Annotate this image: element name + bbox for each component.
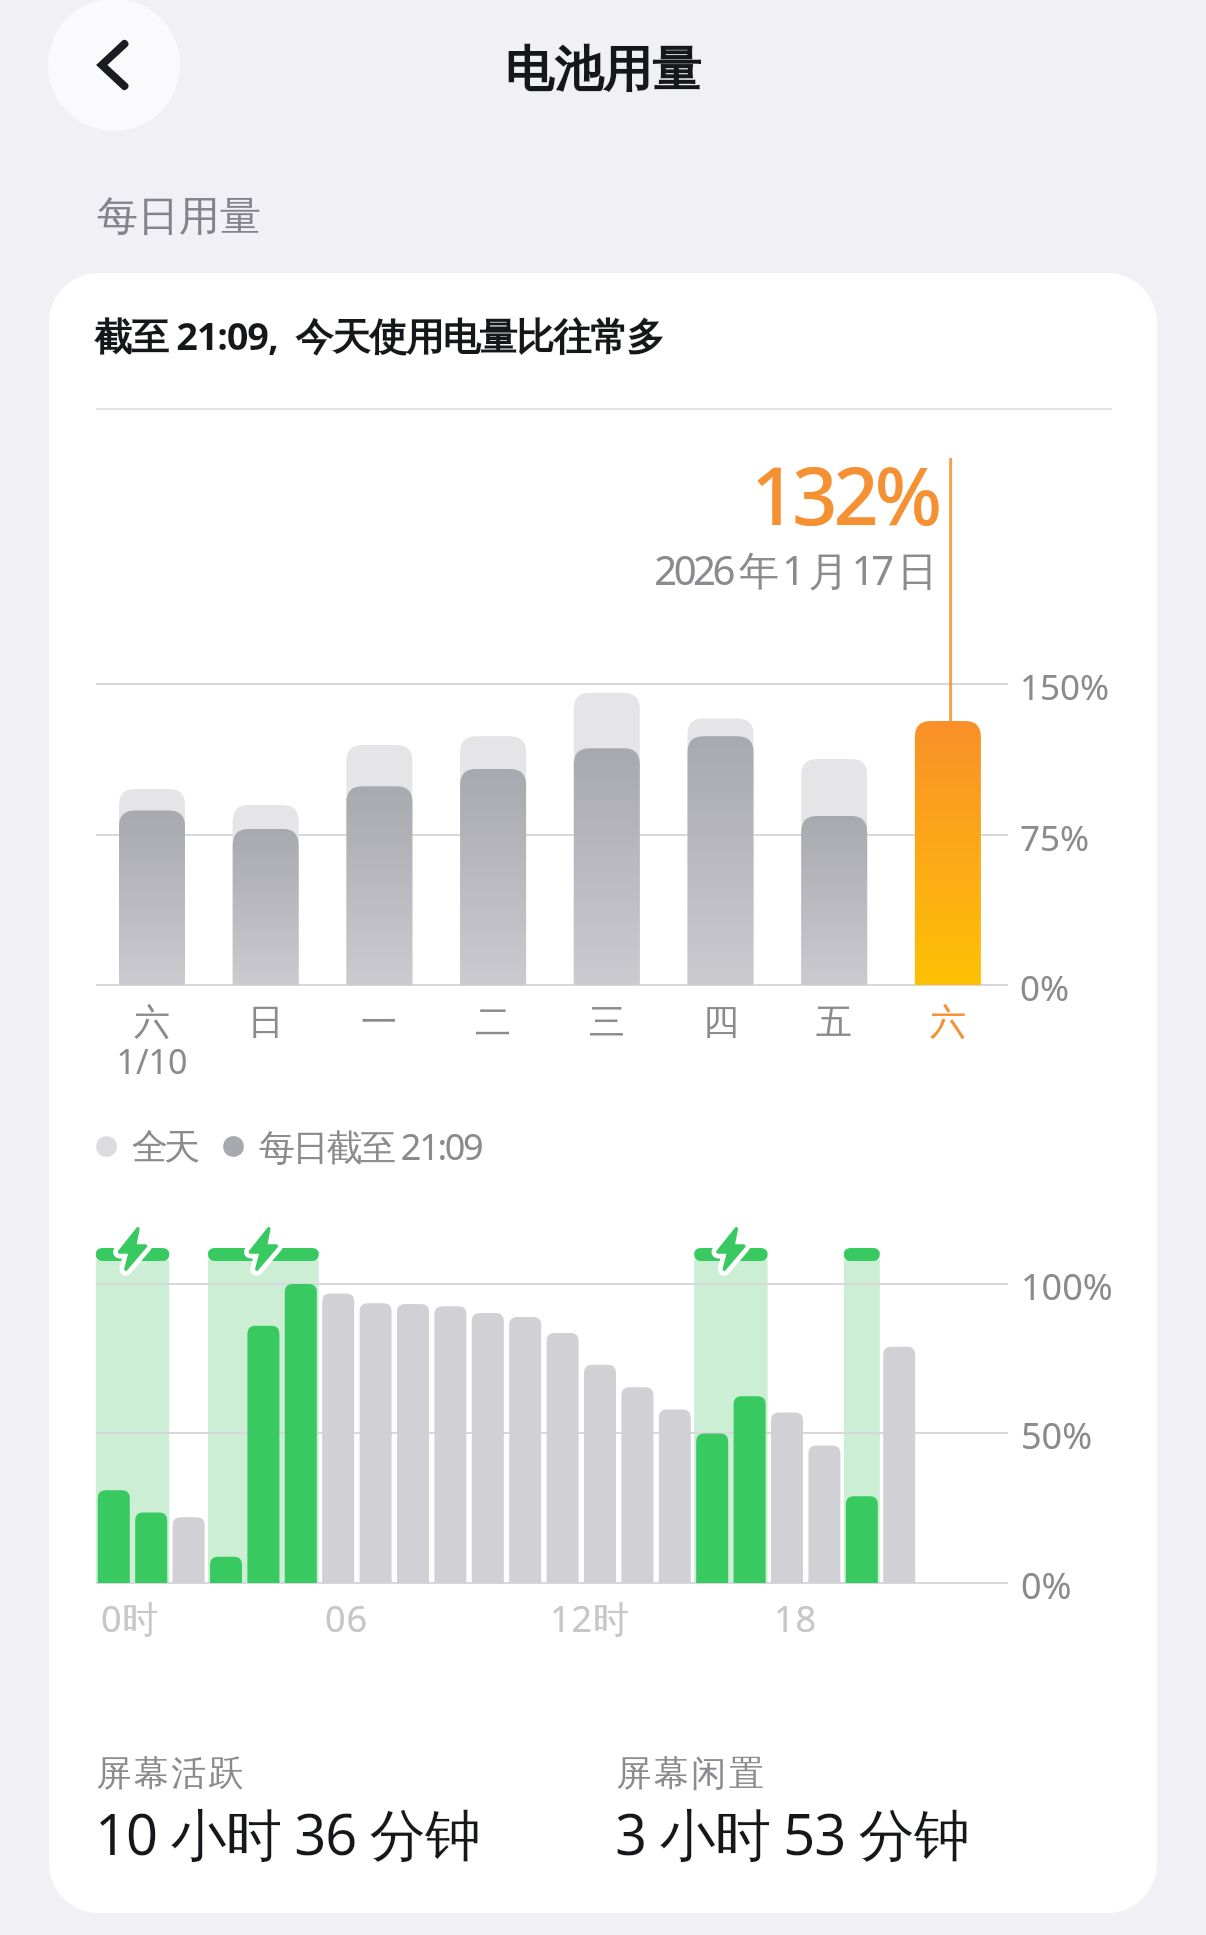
staticText: 06	[325, 1594, 369, 1643]
staticText: 五	[794, 999, 874, 1044]
button[interactable]: 返回	[48, 0, 180, 131]
staticText: 全天	[134, 1124, 198, 1169]
staticText: 四	[681, 999, 761, 1044]
staticText: 日	[226, 999, 306, 1044]
staticText: 每日用量	[97, 191, 261, 243]
staticText: 12时	[550, 1594, 631, 1643]
staticText: 10 小时 36 分钟	[95, 1795, 480, 1871]
staticText: 132%	[49, 441, 938, 549]
staticText: 截至 21:09, 今天使用电量比往常多	[94, 309, 664, 361]
staticText: 0%	[1020, 964, 1070, 1012]
staticText: 屏幕闲置	[615, 1751, 765, 1795]
staticText: 电池用量	[0, 39, 1206, 101]
staticText: 三	[567, 999, 647, 1044]
staticText: 50%	[1021, 1411, 1093, 1460]
staticText: 每日截至 21:09	[259, 1122, 482, 1171]
staticText: 一	[339, 999, 419, 1044]
staticText: 2026 年 1 月 17 日	[49, 542, 934, 597]
staticText: 0时	[101, 1594, 160, 1643]
staticText: 二	[453, 999, 533, 1044]
staticText: 六	[112, 999, 192, 1044]
staticText: 六	[908, 999, 988, 1044]
staticText: 3 小时 53 分钟	[615, 1795, 969, 1871]
staticText: 1/10	[112, 1038, 192, 1084]
staticText: 75%	[1020, 814, 1090, 862]
staticText: 屏幕活跃	[95, 1751, 245, 1795]
staticText: 100%	[1021, 1262, 1113, 1311]
staticText: 150%	[1020, 663, 1110, 711]
staticText: 0%	[1021, 1561, 1072, 1610]
staticText: 18	[774, 1594, 818, 1643]
